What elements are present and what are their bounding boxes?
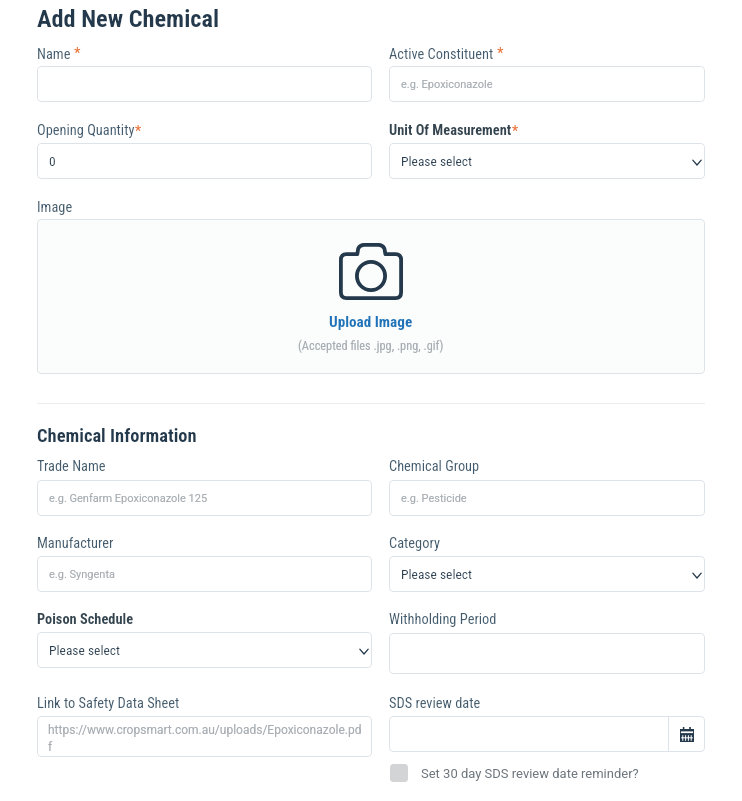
button[interactable]: Upload Image <box>37 219 705 374</box>
button[interactable]: e.g. Syngenta <box>37 556 372 592</box>
staticText: (Accepted files .jpg, .png, .gif) <box>298 339 444 353</box>
staticText: SDS review date <box>389 695 481 712</box>
staticText: Please select <box>49 642 121 658</box>
button[interactable] <box>389 716 668 752</box>
staticText: Chemical Group <box>389 458 480 475</box>
staticText: Image <box>37 199 73 216</box>
button[interactable]: e.g. Pesticide <box>389 480 705 516</box>
button[interactable]: https://www.cropsmart.com.au/uploads/Epo… <box>37 716 372 757</box>
button[interactable]: Pick date <box>668 716 705 752</box>
staticText: e.g. Genfarm Epoxiconazole 125 <box>49 492 208 505</box>
button[interactable]: Please select <box>37 632 372 668</box>
staticText: e.g. Pesticide <box>401 492 467 505</box>
staticText: Please select <box>401 153 473 169</box>
staticText: 0 <box>49 153 56 169</box>
staticText: * <box>135 123 142 140</box>
staticText: https://www.cropsmart.com.au/uploads/Epo… <box>48 723 361 737</box>
staticText: Active Constituent <box>389 46 494 63</box>
button[interactable]: Please select <box>389 143 705 179</box>
button[interactable]: e.g. Epoxiconazole <box>389 66 705 102</box>
staticText: Link to Safety Data Sheet <box>37 695 180 712</box>
button[interactable]: Please select <box>389 556 705 592</box>
staticText: Set 30 day SDS review date reminder? <box>421 766 639 781</box>
staticText: Withholding Period <box>389 611 497 628</box>
button[interactable]: Set 30 day SDS review date reminder? <box>390 764 639 782</box>
staticText: Add New Chemical <box>37 4 220 32</box>
staticText: Unit Of Measurement <box>389 122 512 139</box>
other: Pick date <box>680 727 694 742</box>
staticText: * <box>494 45 504 62</box>
staticText: * <box>71 45 81 62</box>
staticText: Trade Name <box>37 458 106 475</box>
staticText: e.g. Epoxiconazole <box>401 78 493 91</box>
button[interactable] <box>37 66 372 102</box>
staticText: Opening Quantity <box>37 122 135 139</box>
staticText: Chemical Information <box>37 425 197 447</box>
button[interactable]: 0 <box>37 143 372 179</box>
staticText: Please select <box>401 566 473 582</box>
staticText: Category <box>389 535 440 552</box>
staticText: Manufacturer <box>37 535 114 552</box>
button[interactable] <box>389 633 705 674</box>
button[interactable]: e.g. Genfarm Epoxiconazole 125 <box>37 480 372 516</box>
staticText: f <box>48 740 53 754</box>
staticText: Poison Schedule <box>37 611 134 628</box>
staticText: * <box>512 123 519 140</box>
staticText: Upload Image <box>329 313 413 331</box>
staticText: Name <box>37 46 71 63</box>
staticText: e.g. Syngenta <box>49 568 116 581</box>
